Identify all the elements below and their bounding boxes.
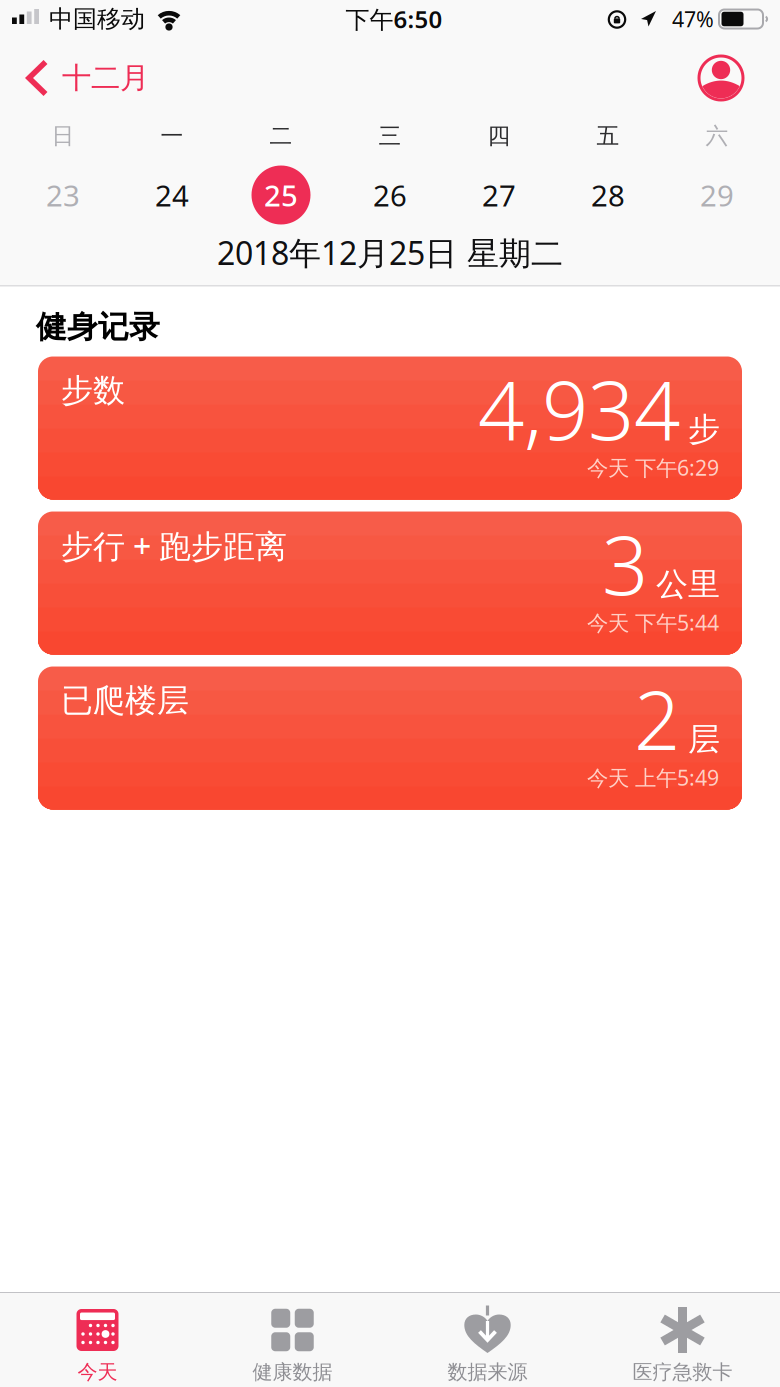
staticText: 健身记录: [36, 308, 160, 346]
staticText: 下午6:50: [345, 3, 442, 35]
staticText: 2018年12月25日 星期二: [217, 231, 563, 274]
staticText: 步数: [61, 371, 125, 410]
staticText: 今天 下午5:44: [587, 608, 719, 637]
staticText: 五: [596, 122, 619, 150]
staticText: 4,934: [478, 354, 680, 462]
staticText: 十二月: [62, 60, 149, 96]
button[interactable]: 24: [117, 160, 226, 230]
staticText: 24: [155, 175, 189, 214]
staticText: 三: [378, 122, 401, 150]
button[interactable]: 27: [444, 160, 553, 230]
staticText: 27: [482, 175, 516, 214]
staticText: 中国移动: [49, 4, 145, 34]
staticText: 25: [264, 175, 298, 214]
staticText: 2: [634, 664, 680, 772]
button[interactable]: 步数: [38, 356, 742, 499]
staticText: 步: [688, 410, 720, 449]
staticText: 医疗急救卡: [632, 1360, 732, 1384]
staticText: 层: [688, 720, 720, 759]
button[interactable]: [697, 54, 744, 101]
button[interactable]: 25: [226, 160, 335, 230]
staticText: 28: [591, 175, 625, 214]
button[interactable]: 23: [8, 160, 117, 230]
staticText: 今天: [77, 1360, 117, 1384]
button[interactable]: 28: [553, 160, 662, 230]
staticText: 47%: [672, 5, 714, 33]
staticText: 公里: [656, 565, 720, 604]
staticText: 一: [160, 122, 183, 150]
staticText: 今天 上午5:49: [587, 763, 719, 792]
button[interactable]: 已爬楼层: [38, 666, 742, 809]
button[interactable]: 健康数据: [195, 1293, 390, 1387]
staticText: 数据来源: [447, 1360, 527, 1384]
button[interactable]: 29: [662, 160, 771, 230]
staticText: 今天 下午6:29: [587, 453, 719, 482]
staticText: 四: [487, 122, 510, 150]
button[interactable]: 数据来源: [390, 1293, 585, 1387]
button[interactable]: 今天: [0, 1293, 195, 1387]
staticText: 3: [602, 509, 648, 617]
staticText: 29: [700, 175, 734, 214]
staticText: 健康数据: [252, 1360, 332, 1384]
staticText: 26: [373, 175, 407, 214]
button[interactable]: 步行 + 跑步距离: [38, 511, 742, 654]
staticText: 六: [705, 122, 728, 150]
staticText: 二: [269, 122, 292, 150]
staticText: 23: [46, 175, 80, 214]
staticText: 步行 + 跑步距离: [61, 524, 287, 567]
button[interactable]: 医疗急救卡: [585, 1293, 780, 1387]
button[interactable]: 26: [335, 160, 444, 230]
button[interactable]: 十二月: [26, 53, 186, 103]
staticText: 已爬楼层: [61, 681, 189, 720]
staticText: 日: [51, 122, 74, 150]
